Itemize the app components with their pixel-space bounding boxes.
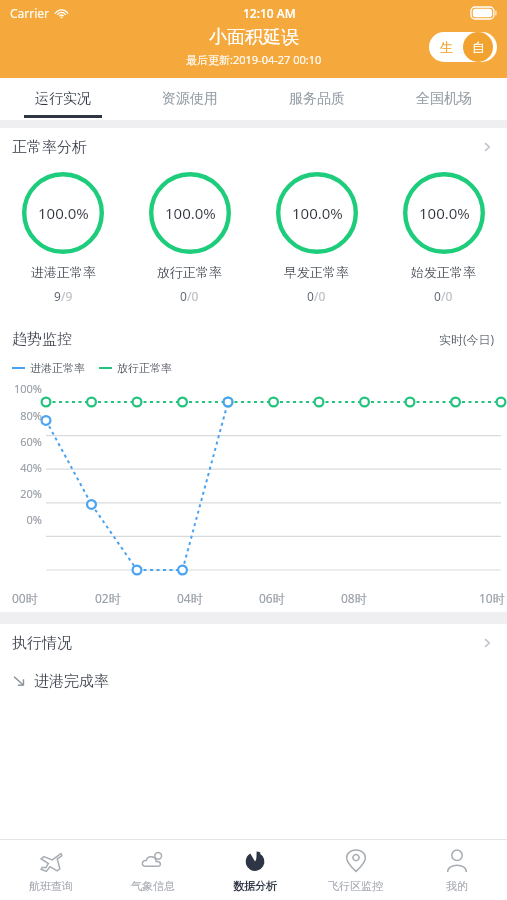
staticText: Carrier bbox=[10, 5, 50, 21]
staticText: 正常率分析 bbox=[12, 138, 87, 157]
staticText: 20% bbox=[0, 486, 42, 501]
staticText: 最后更新:2019-04-27 00:10 bbox=[186, 52, 322, 67]
button[interactable]: 数据分析 bbox=[204, 840, 305, 900]
button[interactable]: 100.0% bbox=[253, 172, 380, 304]
button[interactable]: 100.0% bbox=[380, 172, 507, 304]
button[interactable]: 服务品质 bbox=[253, 78, 380, 120]
staticText: 10时 bbox=[479, 590, 505, 606]
staticText: 自 bbox=[472, 39, 485, 55]
staticText: 执行情况 bbox=[12, 634, 72, 653]
staticText: 小面积延误 bbox=[209, 26, 299, 49]
staticText: 0% bbox=[0, 512, 42, 527]
staticText: 生 bbox=[440, 39, 453, 55]
staticText: 12:10 AM bbox=[243, 5, 296, 21]
staticText: 数据分析 bbox=[233, 879, 277, 893]
staticText: 100% bbox=[0, 381, 42, 396]
staticText: 航班查询 bbox=[29, 879, 73, 893]
button[interactable]: 100.0% bbox=[0, 172, 126, 304]
staticText: 全国机场 bbox=[416, 90, 472, 108]
other: More bbox=[479, 635, 495, 651]
button[interactable]: 航班查询 bbox=[0, 840, 102, 900]
staticText: 08时 bbox=[341, 590, 367, 606]
button[interactable]: 我的 bbox=[406, 840, 507, 900]
staticText: 进港完成率 bbox=[34, 672, 109, 691]
staticText: /0 bbox=[441, 288, 453, 304]
button[interactable]: 全国机场 bbox=[380, 78, 507, 120]
staticText: 100.0% bbox=[419, 203, 470, 223]
staticText: 运行实况 bbox=[35, 90, 91, 108]
staticText: /0 bbox=[187, 288, 199, 304]
button[interactable]: 执行情况 bbox=[0, 624, 507, 662]
staticText: 9 bbox=[54, 288, 61, 304]
staticText: 04时 bbox=[177, 590, 203, 606]
staticText: 我的 bbox=[446, 879, 468, 893]
staticText: 06时 bbox=[259, 590, 285, 606]
button[interactable]: 资源使用 bbox=[126, 78, 253, 120]
staticText: 始发正常率 bbox=[411, 264, 476, 280]
button[interactable]: 运行实况 bbox=[0, 78, 126, 120]
button[interactable]: 100.0% bbox=[126, 172, 253, 304]
staticText: 80% bbox=[0, 408, 42, 423]
button[interactable]: 飞行区监控 bbox=[305, 840, 406, 900]
staticText: 100.0% bbox=[292, 203, 343, 223]
staticText: 00时 bbox=[12, 590, 38, 606]
staticText: 放行正常率 bbox=[117, 361, 172, 375]
staticText: 飞行区监控 bbox=[328, 879, 383, 893]
staticText: 0 bbox=[434, 288, 441, 304]
staticText: 0 bbox=[180, 288, 187, 304]
staticText: 02时 bbox=[95, 590, 121, 606]
staticText: 早发正常率 bbox=[284, 264, 349, 280]
staticText: 100.0% bbox=[165, 203, 216, 223]
button[interactable]: 生 bbox=[429, 32, 497, 62]
staticText: /9 bbox=[61, 288, 73, 304]
staticText: 100.0% bbox=[38, 203, 89, 223]
staticText: 趋势监控 bbox=[12, 330, 72, 349]
other: More bbox=[479, 139, 495, 155]
staticText: 资源使用 bbox=[162, 90, 218, 108]
staticText: 进港正常率 bbox=[31, 264, 96, 280]
staticText: 放行正常率 bbox=[157, 264, 222, 280]
staticText: 进港正常率 bbox=[30, 361, 85, 375]
staticText: /0 bbox=[314, 288, 326, 304]
staticText: 60% bbox=[0, 434, 42, 449]
staticText: 0 bbox=[307, 288, 314, 304]
button[interactable]: 气象信息 bbox=[102, 840, 204, 900]
staticText: 40% bbox=[0, 460, 42, 475]
staticText: 气象信息 bbox=[131, 879, 175, 893]
staticText: 实时(今日) bbox=[439, 331, 495, 347]
staticText: 服务品质 bbox=[289, 90, 345, 108]
button[interactable]: 正常率分析 bbox=[0, 128, 507, 166]
